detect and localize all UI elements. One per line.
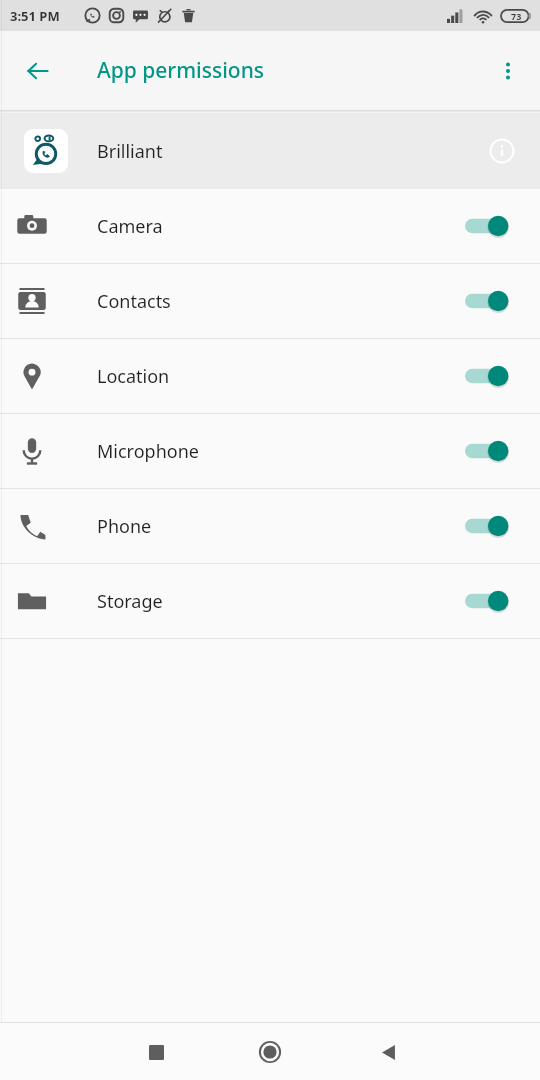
button[interactable]: Back (14, 47, 62, 95)
button[interactable]: Phone permission toggle (464, 506, 518, 546)
staticText: Brilliant (97, 139, 163, 164)
button[interactable]: Microphone (0, 414, 540, 488)
staticText: Storage (97, 589, 163, 614)
staticText: Microphone (97, 439, 199, 464)
staticText: 73 (511, 10, 522, 22)
button[interactable]: Contacts (0, 264, 540, 338)
staticText: Location (97, 364, 170, 389)
staticText: Camera (97, 214, 163, 239)
button[interactable]: Home (247, 1029, 293, 1075)
button[interactable]: Contacts permission toggle (464, 281, 518, 321)
button[interactable]: Microphone permission toggle (464, 431, 518, 471)
button[interactable]: Location (0, 339, 540, 413)
button[interactable]: Phone (0, 489, 540, 563)
button[interactable]: Storage permission toggle (464, 581, 518, 621)
button[interactable]: App info (482, 131, 522, 171)
button[interactable]: Location permission toggle (464, 356, 518, 396)
button[interactable]: Recent apps (134, 1030, 178, 1074)
button[interactable]: Back (366, 1030, 410, 1074)
button[interactable]: Brilliant (0, 113, 540, 189)
staticText: 3:51 PM (10, 7, 60, 25)
staticText: Phone (97, 514, 152, 539)
staticText: App permissions (97, 56, 265, 85)
button[interactable]: Camera (0, 189, 540, 263)
button[interactable]: Storage (0, 564, 540, 638)
button[interactable]: Camera permission toggle (464, 206, 518, 246)
staticText: Contacts (97, 289, 171, 314)
button[interactable]: More options (486, 49, 530, 93)
